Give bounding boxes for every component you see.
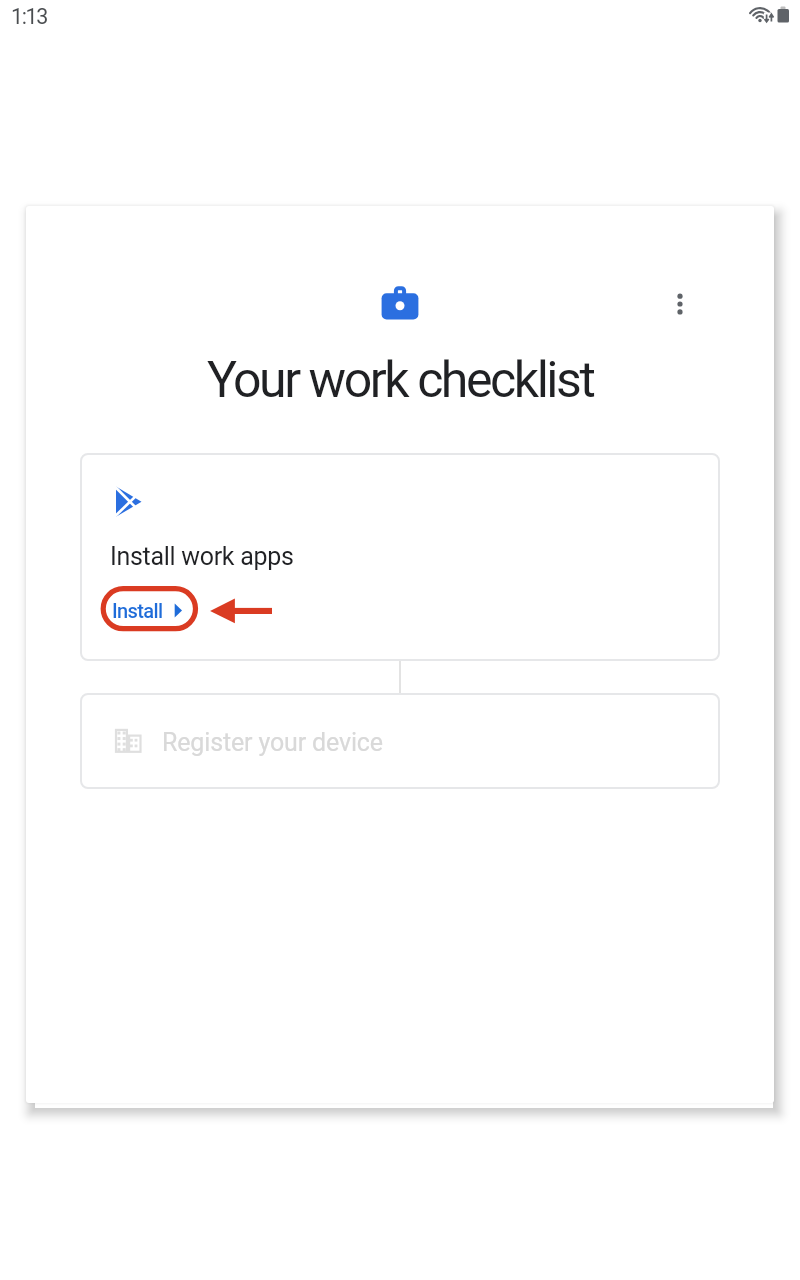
button[interactable]: Register your device xyxy=(80,693,720,789)
staticText: Your work checklist xyxy=(207,351,594,410)
staticText: Install work apps xyxy=(110,542,294,571)
button[interactable] xyxy=(656,280,704,328)
button[interactable]: Install xyxy=(100,585,198,632)
staticText: Register your device xyxy=(162,728,383,757)
button[interactable]: Install work apps xyxy=(80,453,720,661)
staticText: 1:13 xyxy=(11,4,47,29)
staticText: Install xyxy=(112,599,163,622)
